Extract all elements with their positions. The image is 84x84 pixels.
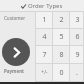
staticText: . <box>76 68 78 78</box>
button[interactable]: 8 <box>53 46 70 63</box>
button[interactable]: 7 <box>36 46 53 63</box>
staticText: 4 <box>42 32 47 42</box>
staticText: 7 <box>42 50 47 60</box>
button[interactable]: 1 <box>36 12 53 28</box>
staticText: 3 <box>75 15 80 25</box>
button[interactable]: . <box>70 64 84 81</box>
button[interactable]: Proceed to payment <box>2 38 30 66</box>
staticText: 9 <box>75 50 80 60</box>
staticText: 0 <box>59 68 64 78</box>
staticText: 2 <box>59 15 64 25</box>
staticText: 6 <box>75 32 80 42</box>
staticText: 8 <box>59 50 64 60</box>
staticText: Order Types <box>28 2 63 10</box>
button[interactable]: +/- <box>36 64 53 81</box>
button[interactable]: Order Types <box>0 0 84 12</box>
staticText: +/- <box>41 69 48 76</box>
button[interactable]: Payment <box>4 68 25 74</box>
button[interactable]: Customer <box>4 15 26 21</box>
button[interactable]: 9 <box>70 46 84 63</box>
staticText: 1 <box>42 15 47 25</box>
button[interactable]: 0 <box>53 64 70 81</box>
button[interactable]: 2 <box>53 12 70 28</box>
staticText: 5 <box>59 32 64 42</box>
button[interactable]: 6 <box>70 29 84 45</box>
button[interactable]: 4 <box>36 29 53 45</box>
button[interactable]: 5 <box>53 29 70 45</box>
button[interactable]: 3 <box>70 12 84 28</box>
